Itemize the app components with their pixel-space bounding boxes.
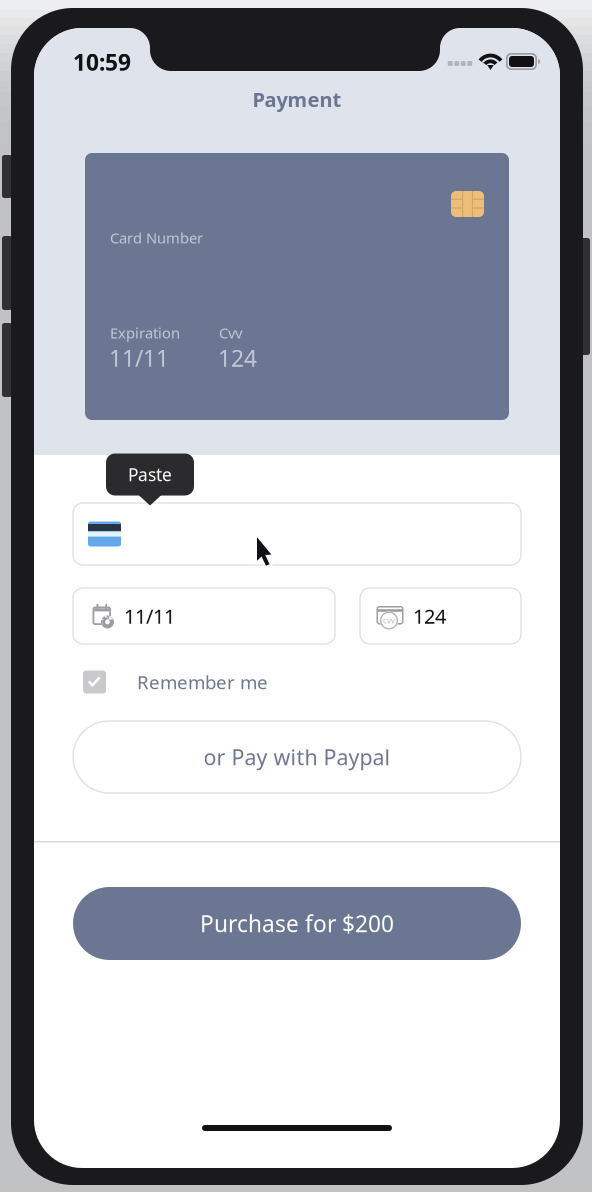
staticText: 11/11 — [124, 603, 175, 629]
staticText: Card Number — [110, 228, 203, 247]
button[interactable] — [73, 503, 521, 565]
staticText: cvv — [383, 615, 395, 626]
staticText: 124 — [413, 603, 446, 629]
staticText: 124 — [218, 343, 257, 373]
button[interactable]: Remember me — [83, 665, 323, 699]
button[interactable]: Purchase for $200 — [73, 887, 521, 960]
staticText: 11/11 — [109, 343, 169, 373]
button[interactable]: 11/11 — [73, 588, 335, 644]
button[interactable]: or Pay with Paypal — [73, 721, 521, 793]
staticText: Purchase for $200 — [200, 908, 394, 938]
staticText: or Pay with Paypal — [203, 743, 390, 771]
staticText: Remember me — [137, 670, 268, 694]
button[interactable]: cvv — [360, 588, 521, 644]
staticText: Expiration — [110, 323, 180, 342]
staticText: Cvv — [219, 323, 242, 342]
staticText: Paste — [128, 463, 172, 486]
button[interactable]: Paste — [106, 448, 194, 501]
staticText: 10:59 — [73, 47, 131, 77]
staticText: Payment — [252, 86, 341, 113]
